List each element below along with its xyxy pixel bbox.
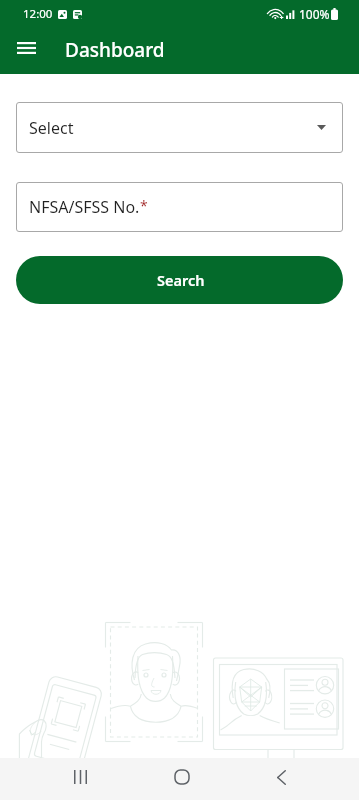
button[interactable]: Search [16, 256, 343, 304]
button[interactable]: Back [259, 758, 303, 800]
staticText: NFSA/SFSS No. [29, 196, 140, 218]
staticText: Search [157, 270, 205, 290]
staticText: 12:00 [23, 6, 53, 22]
button[interactable]: Select [16, 102, 343, 153]
staticText: Select [29, 117, 74, 139]
staticText: 100% [299, 6, 330, 22]
button[interactable]: Menu [2, 29, 46, 73]
button[interactable]: NFSA/SFSS No. [16, 182, 343, 232]
staticText: Dashboard [65, 37, 165, 63]
button[interactable]: Recent apps [58, 758, 102, 800]
staticText: * [140, 196, 148, 215]
button[interactable]: Home [160, 758, 204, 800]
